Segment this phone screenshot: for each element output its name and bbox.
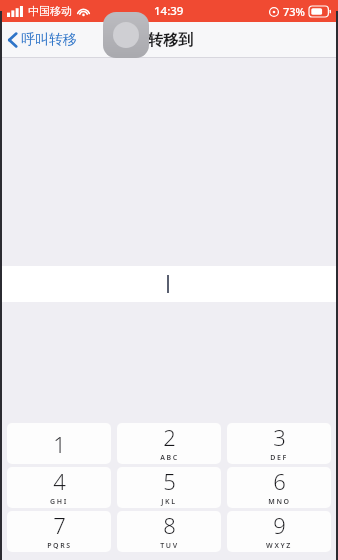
- staticText: GHI: [50, 497, 68, 507]
- staticText: 14:39: [154, 3, 184, 19]
- button[interactable]: 1: [7, 423, 111, 464]
- staticText: 3: [273, 423, 286, 452]
- button[interactable]: [0, 266, 338, 302]
- button[interactable]: 5: [117, 467, 221, 508]
- staticText: 73%: [283, 4, 305, 19]
- button[interactable]: 2: [117, 423, 221, 464]
- staticText: 5: [163, 467, 176, 496]
- staticText: ABC: [160, 453, 179, 463]
- staticText: DEF: [270, 453, 288, 463]
- staticText: MNO: [268, 497, 291, 507]
- staticText: 4: [53, 467, 66, 496]
- button[interactable]: 6: [227, 467, 331, 508]
- staticText: 转移到: [148, 31, 193, 50]
- staticText: PQRS: [47, 541, 72, 551]
- staticText: TUV: [160, 541, 179, 551]
- button[interactable]: 3: [227, 423, 331, 464]
- button[interactable]: 4: [7, 467, 111, 508]
- staticText: 9: [273, 511, 286, 540]
- button[interactable]: 7: [7, 511, 111, 552]
- staticText: 7: [53, 511, 66, 540]
- staticText: 呼叫转移: [21, 31, 77, 49]
- button[interactable]: 9: [227, 511, 331, 552]
- staticText: 6: [273, 467, 286, 496]
- button[interactable]: AssistiveTouch: [103, 12, 149, 58]
- button[interactable]: 8: [117, 511, 221, 552]
- staticText: 1: [53, 429, 66, 459]
- staticText: 中国移动: [28, 4, 72, 18]
- staticText: 2: [163, 423, 176, 452]
- button[interactable]: 呼叫转移: [0, 27, 87, 53]
- staticText: 8: [163, 511, 176, 540]
- staticText: WXYZ: [266, 541, 292, 551]
- staticText: JKL: [161, 497, 177, 507]
